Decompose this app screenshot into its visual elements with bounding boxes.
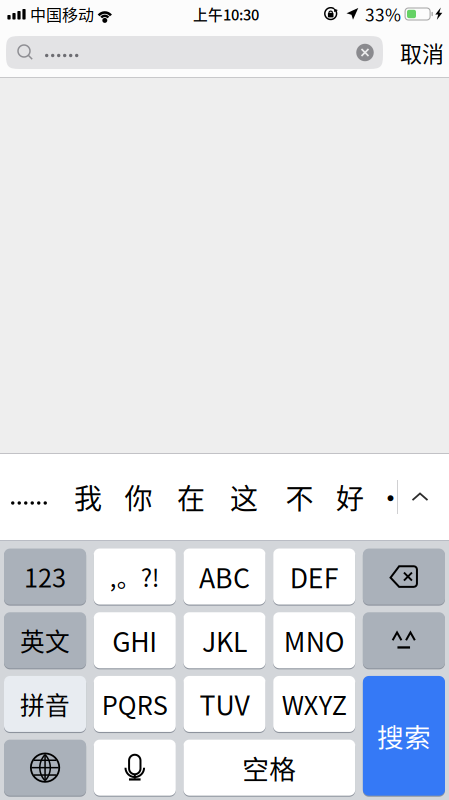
staticText: 中国移动 [30, 2, 94, 26]
staticText: 好 [336, 477, 364, 517]
button[interactable]: 拼音 [4, 675, 86, 732]
button[interactable]: ,。?! [94, 548, 176, 605]
staticText: 不 [285, 477, 313, 517]
staticText: TUV [199, 685, 249, 723]
button[interactable]: DEF [273, 548, 355, 605]
button[interactable]: PQRS [94, 675, 176, 732]
button[interactable]: ABC [183, 548, 265, 605]
staticText: GHI [112, 621, 157, 659]
staticText: · [376, 477, 404, 517]
button[interactable]: 搜索 [363, 675, 445, 796]
button[interactable]: 这 [221, 454, 267, 540]
staticText: 搜索 [377, 716, 431, 755]
button[interactable]: TUV [183, 675, 265, 732]
staticText: DEF [290, 557, 339, 596]
staticText: 123 [24, 558, 66, 595]
button[interactable]: 取消 [391, 34, 449, 70]
button[interactable]: 在 [168, 454, 214, 540]
button[interactable]: Emoticons [363, 612, 445, 669]
staticText: 英文 [20, 622, 70, 658]
button[interactable]: MNO [273, 612, 355, 669]
staticText: ,。?! [110, 559, 160, 594]
button[interactable]: Dictation [94, 739, 176, 796]
button[interactable]: 好 [327, 454, 373, 540]
staticText: 上午10:30 [193, 3, 259, 25]
staticText: 拼音 [20, 686, 70, 722]
staticText: 我 [74, 477, 102, 517]
button[interactable]: 你 [115, 454, 161, 540]
button[interactable]: · [367, 454, 413, 540]
staticText: 你 [124, 477, 152, 517]
button[interactable]: WXYZ [273, 675, 355, 732]
button[interactable]: 不 [276, 454, 322, 540]
button[interactable]: 空格 [183, 739, 355, 796]
button[interactable]: JKL [183, 612, 265, 669]
staticText: MNO [284, 621, 345, 659]
staticText: 在 [177, 477, 205, 517]
staticText: PQRS [102, 686, 168, 722]
button[interactable] [6, 36, 383, 69]
staticText: 33% [365, 1, 401, 27]
button[interactable]: GHI [94, 612, 176, 669]
button[interactable]: Hide keyboard [394, 454, 445, 540]
staticText: 这 [230, 477, 258, 517]
button[interactable]: 123 [4, 548, 86, 605]
staticText: JKL [202, 621, 247, 659]
button[interactable]: 我 [65, 454, 111, 540]
button[interactable]: Delete [363, 548, 445, 605]
staticText: 空格 [242, 748, 296, 787]
button[interactable]: Next keyboard [4, 739, 86, 796]
button[interactable]: 英文 [4, 612, 86, 669]
staticText: 取消 [400, 37, 444, 68]
staticText: WXYZ [282, 686, 347, 722]
staticText: ABC [199, 557, 250, 596]
button[interactable]: More candidates [3, 454, 55, 540]
